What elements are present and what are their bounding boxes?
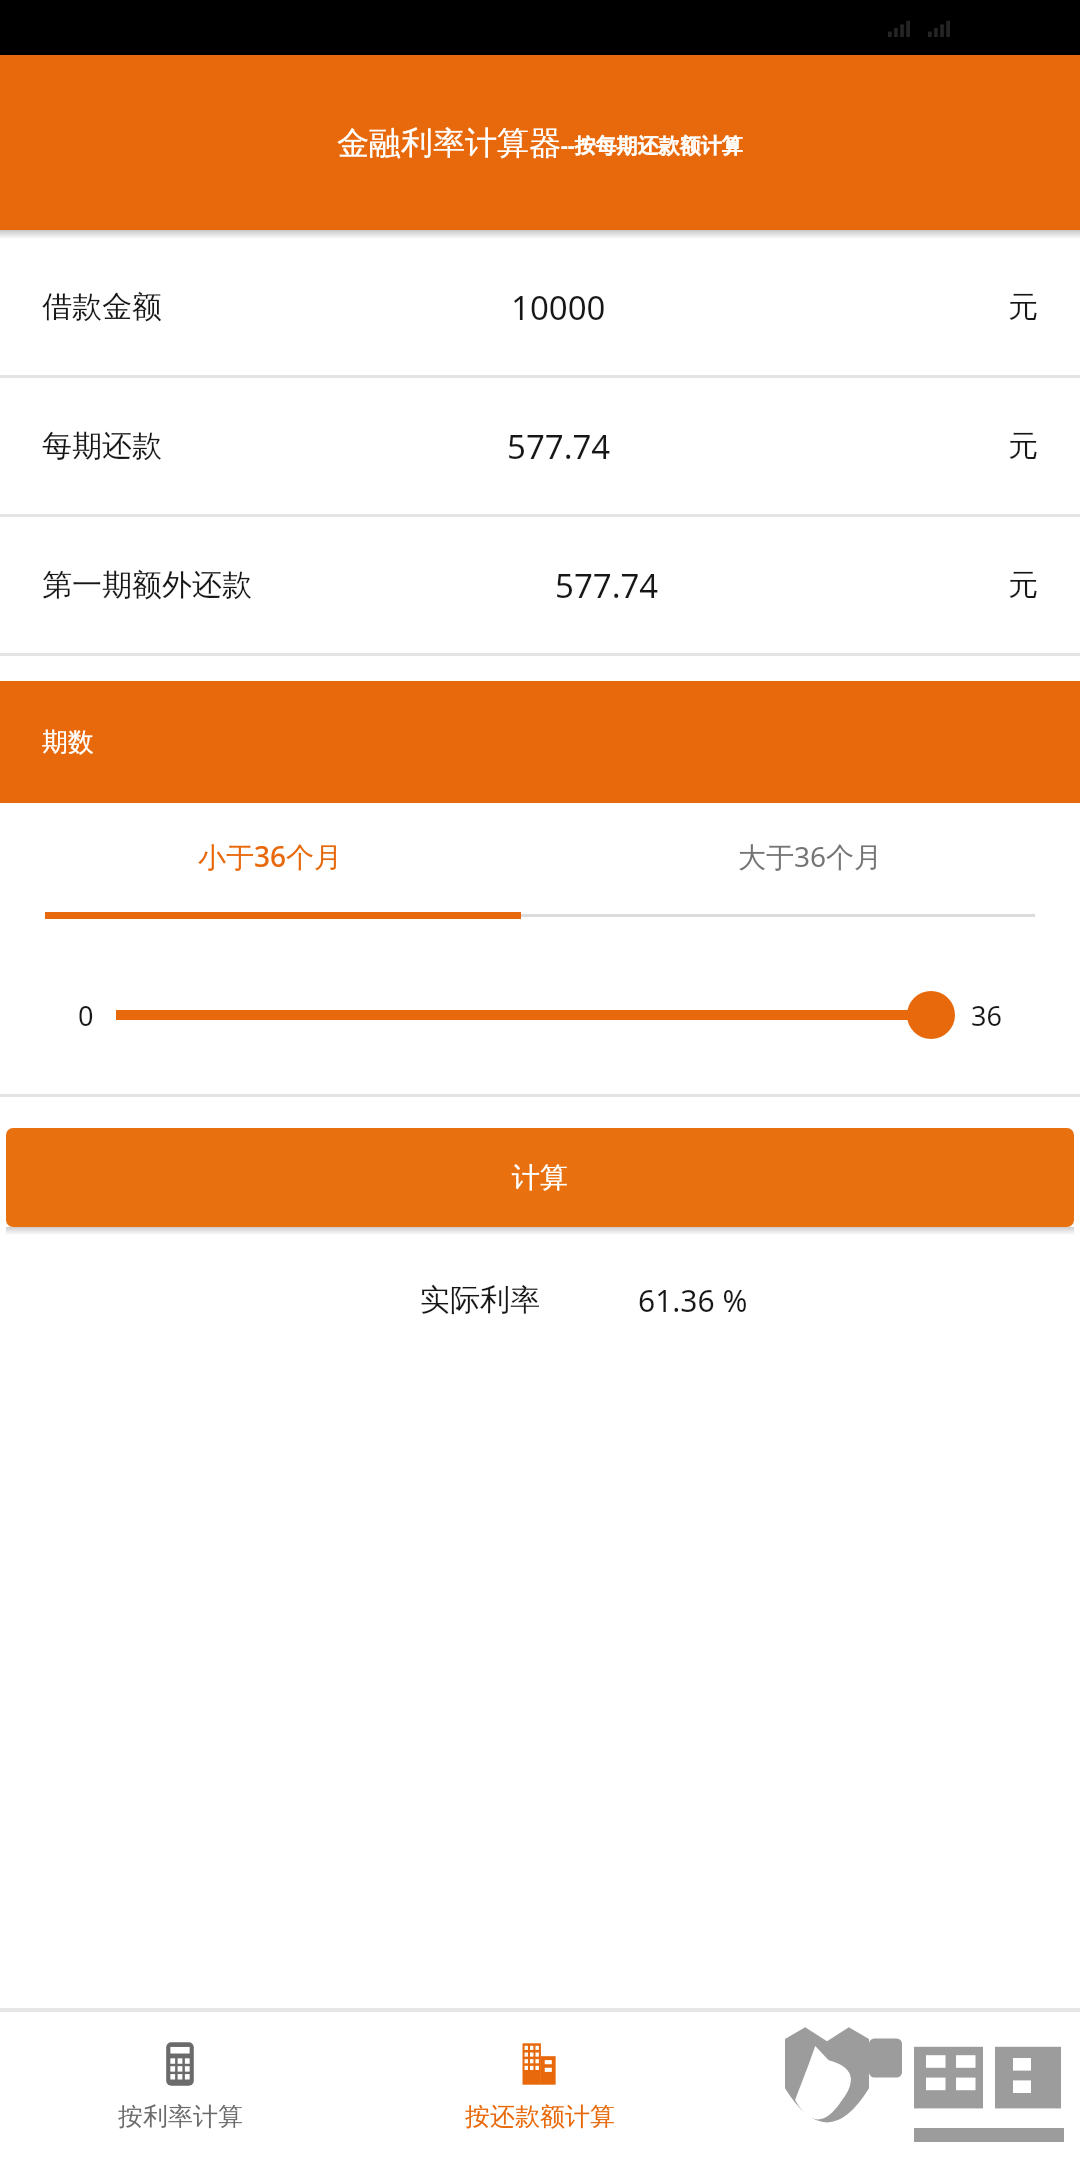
staticText: 元 <box>1008 427 1038 465</box>
button[interactable]: 借款金额 <box>0 239 1080 375</box>
button[interactable]: 期数 <box>0 681 1080 803</box>
staticText: 大于36个月 <box>738 837 883 875</box>
button[interactable]: 计算 <box>6 1128 1074 1227</box>
button[interactable]: 第一期额外还款 <box>0 517 1080 653</box>
staticText: 577.74 <box>555 563 659 608</box>
staticText: 10000 <box>511 285 606 330</box>
button[interactable]: 期数滑块 <box>116 991 953 1039</box>
staticText: 36 <box>971 997 1002 1034</box>
staticText: 金融利率计算器 <box>337 123 561 163</box>
staticText: 按利率计算 <box>118 2101 243 2132</box>
staticText: 期数 <box>42 726 94 759</box>
staticText: 小于36个月 <box>198 837 343 875</box>
button[interactable]: 每期还款 <box>0 378 1080 514</box>
staticText: 元 <box>1008 288 1038 326</box>
staticText: 计算 <box>512 1160 568 1195</box>
staticText: 第一期额外还款 <box>42 566 252 604</box>
staticText: 元 <box>1008 566 1038 604</box>
staticText: --按每期还款额计算 <box>561 131 743 160</box>
button[interactable]: 大于36个月 <box>540 803 1080 936</box>
staticText: 按还款额计算 <box>465 2101 615 2132</box>
button[interactable]: 小于36个月 <box>0 803 540 936</box>
button[interactable]: 按还款额计算 <box>360 2012 720 2160</box>
staticText: 61.36 % <box>638 1280 748 1321</box>
staticText: 577.74 <box>507 424 611 469</box>
other: 按利率计算 <box>157 2041 203 2087</box>
button[interactable]: 按利率计算 <box>0 2012 360 2160</box>
staticText: 每期还款 <box>42 427 162 465</box>
staticText: 借款金额 <box>42 288 162 326</box>
staticText: 实际利率 <box>420 1281 540 1319</box>
other: 按还款额计算 <box>517 2041 563 2087</box>
staticText: 0 <box>78 997 94 1034</box>
